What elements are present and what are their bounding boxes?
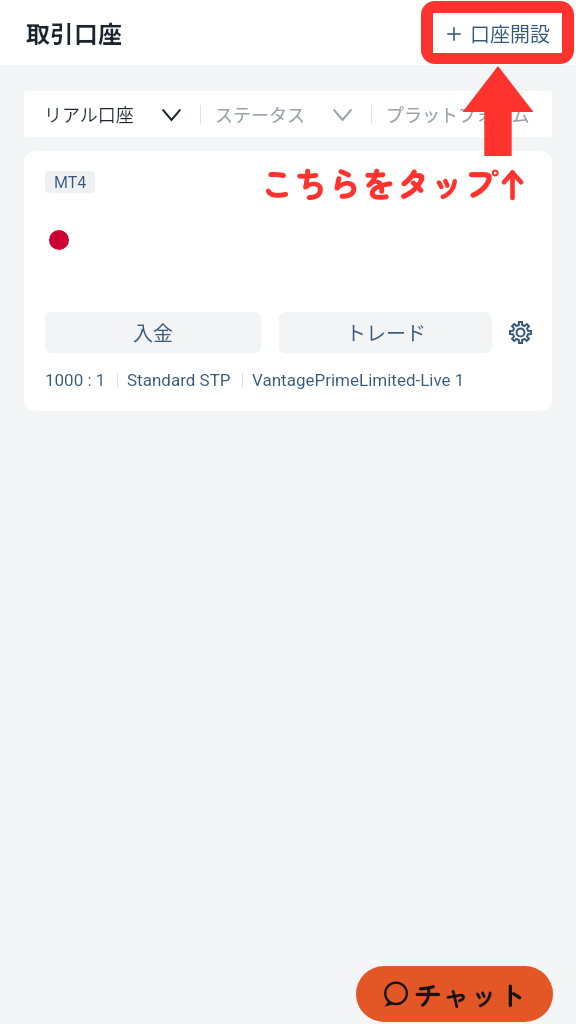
staticText: 口座開設 <box>470 19 550 48</box>
staticText: トレード <box>346 318 426 347</box>
button[interactable]: チャット <box>356 966 553 1022</box>
staticText: チャット <box>414 974 527 1015</box>
staticText: MT4 <box>54 173 87 192</box>
button[interactable]: 口座開設 <box>433 13 562 53</box>
button[interactable]: トレード <box>279 312 492 353</box>
staticText: ステータス <box>215 101 305 127</box>
staticText: 入金 <box>133 318 173 347</box>
staticText: こちらをタップ <box>260 158 498 207</box>
staticText: 1000 : 1 <box>45 370 106 390</box>
button[interactable]: プラットフォーム <box>386 101 552 127</box>
staticText: VantagePrimeLimited-Live 1 <box>252 370 465 390</box>
button[interactable]: Account settings <box>505 317 535 347</box>
staticText: リアル口座 <box>44 101 134 127</box>
button[interactable]: 入金 <box>45 312 261 353</box>
staticText: プラットフォーム <box>386 101 530 127</box>
button[interactable]: リアル口座 <box>44 101 181 127</box>
button[interactable]: ステータス <box>215 101 352 127</box>
staticText: 取引口座 <box>26 15 122 50</box>
staticText: Standard STP <box>127 370 231 390</box>
